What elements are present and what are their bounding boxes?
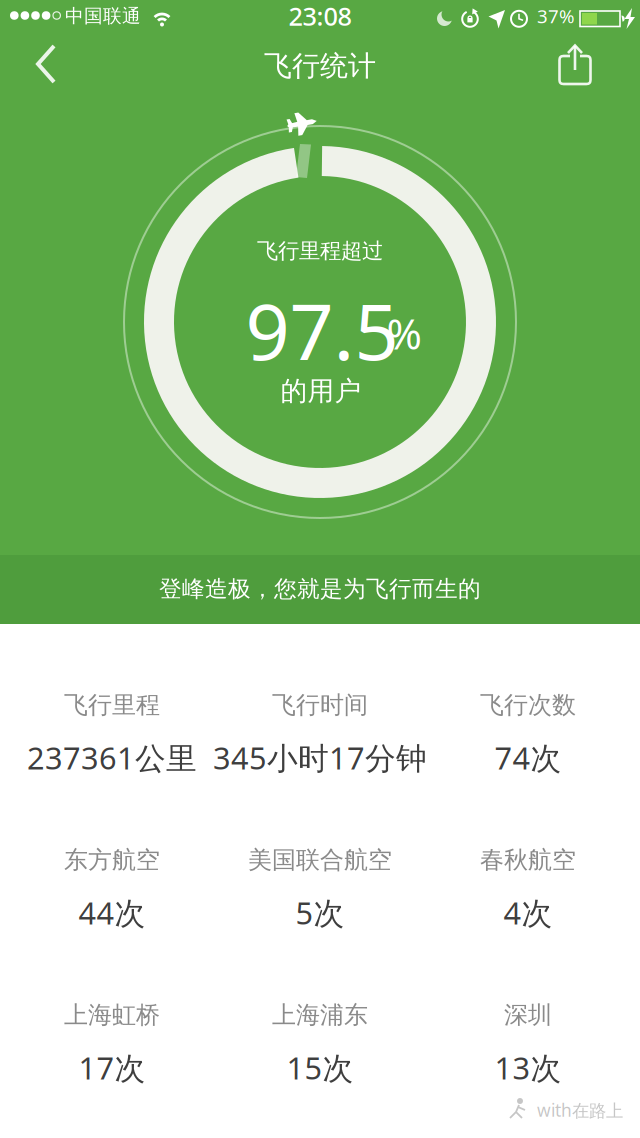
staticText: % xyxy=(386,305,421,361)
staticText: with在路上 xyxy=(537,1098,623,1121)
staticText: 飞行次数 xyxy=(480,690,576,720)
staticText: 23:08 xyxy=(288,0,351,33)
staticText: 97.5 xyxy=(245,279,398,381)
staticText: 美国联合航空 xyxy=(248,845,392,875)
staticText: 的用户 xyxy=(280,375,361,407)
staticText: 37% xyxy=(537,4,575,28)
staticText: 44次 xyxy=(78,892,145,933)
staticText: 345小时17分钟 xyxy=(213,737,427,778)
staticText: 74次 xyxy=(494,737,561,778)
staticText: 飞行时间 xyxy=(272,690,368,720)
staticText: 4次 xyxy=(503,892,552,933)
staticText: 东方航空 xyxy=(64,845,160,875)
staticText: 15次 xyxy=(286,1047,353,1088)
staticText: 登峰造极，您就是为飞行而生的 xyxy=(159,575,481,603)
button[interactable]: 返回 xyxy=(16,38,76,90)
staticText: 春秋航空 xyxy=(480,845,576,875)
staticText: 中国联通 xyxy=(65,4,141,27)
staticText: 飞行统计 xyxy=(264,49,376,83)
staticText: 飞行里程超过 xyxy=(257,238,383,264)
staticText: 13次 xyxy=(494,1047,561,1088)
staticText: 深圳 xyxy=(504,1000,552,1030)
staticText: 17次 xyxy=(78,1047,145,1088)
button[interactable]: 分享 xyxy=(553,44,597,88)
staticText: 上海浦东 xyxy=(272,1000,368,1030)
staticText: 上海虹桥 xyxy=(64,1000,160,1030)
staticText: 5次 xyxy=(295,892,344,933)
staticText: 237361公里 xyxy=(27,737,197,778)
staticText: 飞行里程 xyxy=(64,690,160,720)
